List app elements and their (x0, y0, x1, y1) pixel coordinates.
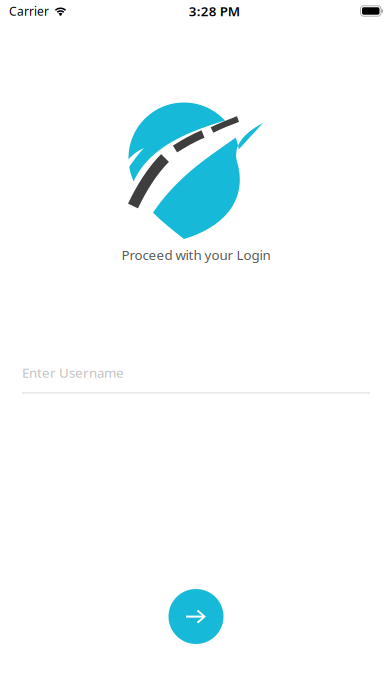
button[interactable]: Continue (168, 589, 223, 644)
staticText: Carrier (9, 3, 49, 19)
staticText: 3:28 PM (189, 2, 240, 20)
staticText: Enter Username (22, 364, 124, 381)
staticText: Proceed with your Login (121, 246, 270, 264)
